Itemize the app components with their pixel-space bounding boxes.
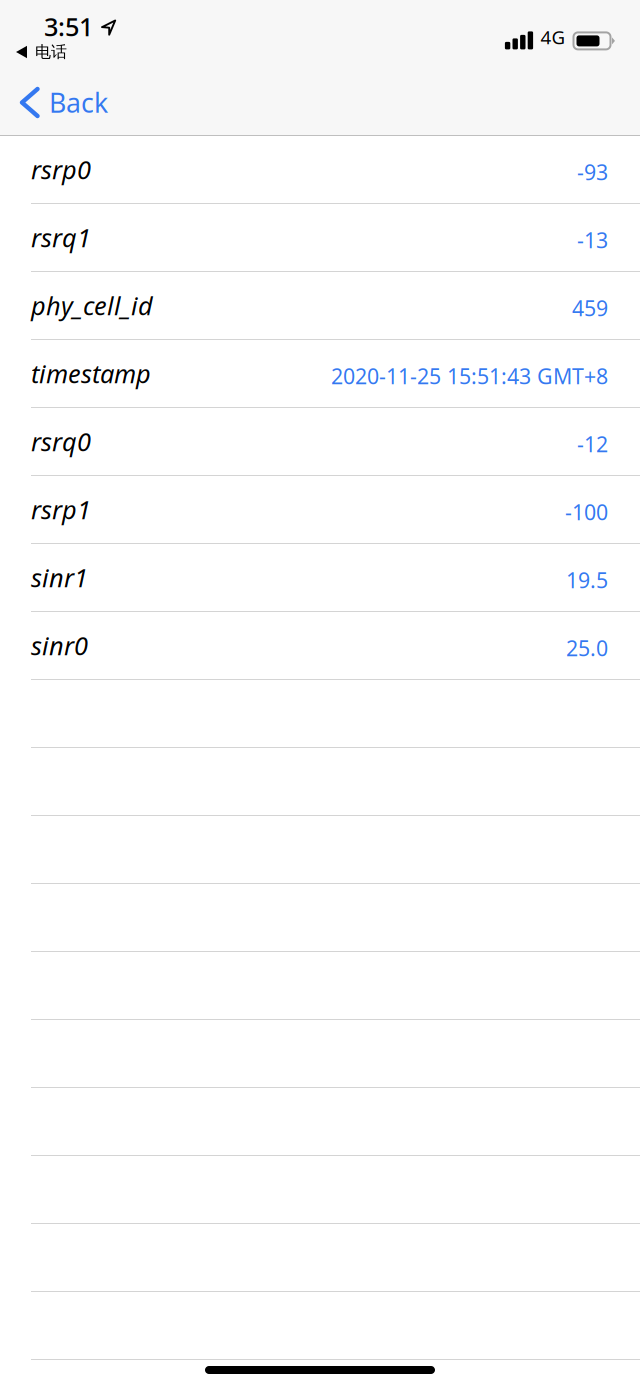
staticText: rsrq0 xyxy=(31,425,91,458)
staticText: -93 xyxy=(577,158,608,186)
button[interactable]: rsrq1 xyxy=(0,204,640,272)
staticText: -100 xyxy=(565,498,608,526)
staticText: timestamp xyxy=(31,357,151,390)
staticText: 25.0 xyxy=(566,634,608,662)
button[interactable]: phy_cell_id xyxy=(0,272,640,340)
staticText: 4G xyxy=(540,25,565,49)
staticText: 19.5 xyxy=(566,566,608,594)
staticText: rsrp0 xyxy=(31,153,91,186)
button[interactable]: 电话 xyxy=(0,44,77,60)
staticText: -13 xyxy=(577,226,608,254)
button[interactable]: rsrp1 xyxy=(0,476,640,544)
button[interactable]: rsrp0 xyxy=(0,136,640,204)
staticText: -12 xyxy=(577,430,608,458)
staticText: rsrq1 xyxy=(31,221,91,254)
staticText: Back xyxy=(49,85,108,120)
button[interactable]: sinr1 xyxy=(0,544,640,612)
button[interactable]: rsrq0 xyxy=(0,408,640,476)
staticText: phy_cell_id xyxy=(31,289,153,322)
staticText: 2020-11-25 15:51:43 GMT+8 xyxy=(331,362,608,390)
button[interactable]: sinr0 xyxy=(0,612,640,680)
staticText: rsrp1 xyxy=(31,493,91,526)
staticText: 3:51 xyxy=(44,10,93,43)
staticText: sinr1 xyxy=(31,561,88,594)
button[interactable]: timestamp xyxy=(0,340,640,408)
button[interactable]: Back xyxy=(0,70,140,135)
staticText: 459 xyxy=(572,294,608,322)
staticText: sinr0 xyxy=(31,629,88,662)
staticText: 电话 xyxy=(35,42,67,62)
